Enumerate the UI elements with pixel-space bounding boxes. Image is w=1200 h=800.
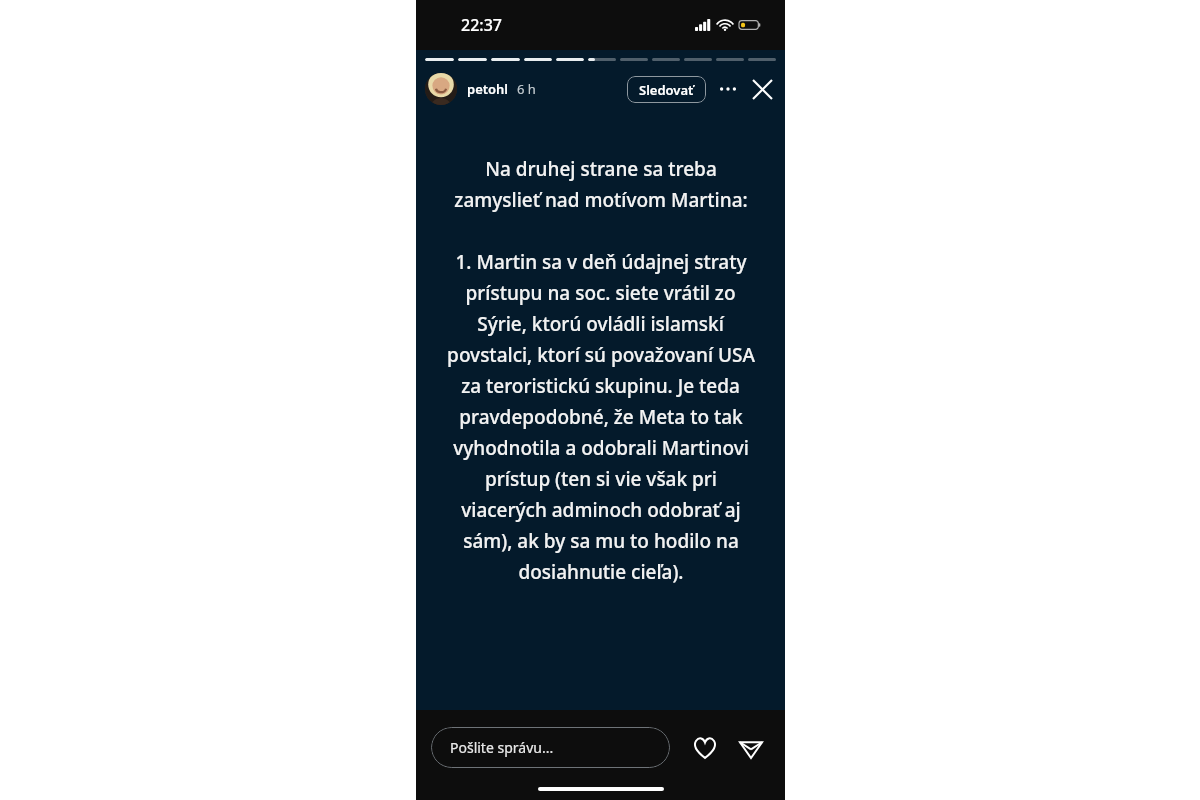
button[interactable]: Like (689, 732, 721, 764)
button[interactable]: Pošlite správu... (431, 727, 670, 768)
staticText: pravdepodobné, že Meta to tak (459, 404, 743, 435)
staticText: viacerých adminoch odobrať aj (461, 497, 741, 528)
button[interactable]: Sledovať (627, 76, 706, 103)
staticText: dosiahnutie cieľa). (518, 559, 684, 590)
staticText: 1. Martin sa v deň údajnej straty (455, 249, 747, 280)
staticText: prístup (ten si vie však pri (485, 466, 717, 497)
button[interactable]: More options (716, 77, 740, 101)
staticText: vyhodnotila a odobrali Martinovi (453, 435, 749, 466)
staticText: 22:37 (461, 14, 502, 36)
staticText: prístupu na soc. siete vrátil zo (465, 280, 736, 311)
staticText: Sýrie, ktorú ovládli islamskí (477, 311, 724, 342)
staticText: povstalci, ktorí sú považovaní USA (447, 342, 755, 373)
staticText: Pošlite správu... (450, 738, 554, 757)
staticText: Sledovať (639, 81, 694, 99)
button[interactable]: Close (748, 75, 776, 103)
button[interactable]: Profile picture (425, 73, 457, 105)
staticText: sám), ak by sa mu to hodilo na (463, 528, 739, 559)
button[interactable]: petohl (467, 80, 509, 98)
staticText: Na druhej strane sa treba (485, 156, 717, 187)
staticText: 6 h (517, 80, 536, 98)
staticText: za teroristickú skupinu. Je teda (461, 373, 740, 404)
button[interactable]: Share (735, 732, 767, 764)
staticText: zamyslieť nad motívom Martina: (454, 187, 748, 218)
